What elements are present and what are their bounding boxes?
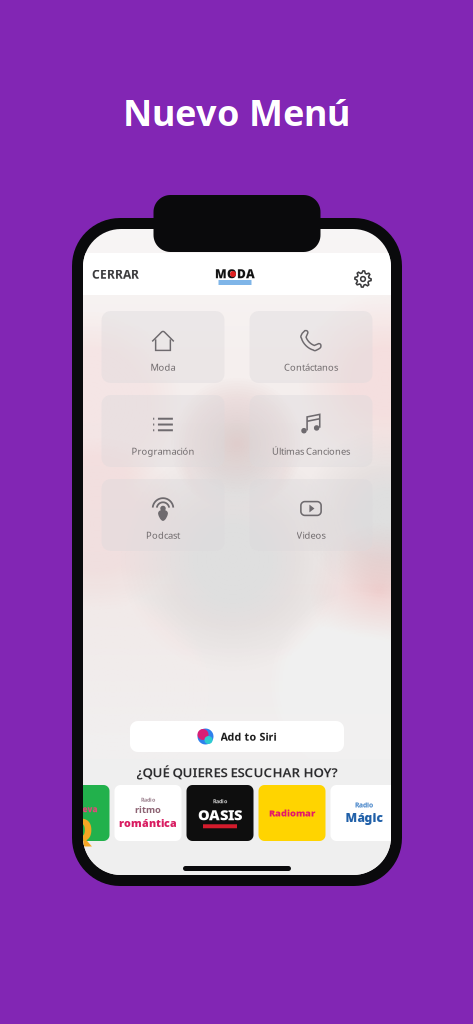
button[interactable]: Moda xyxy=(101,311,224,383)
staticText: CERRAR xyxy=(92,266,139,282)
staticText: Radio xyxy=(141,796,155,803)
staticText: Radio xyxy=(355,801,373,809)
staticText: Últimas Canciones xyxy=(272,445,350,457)
button[interactable]: Nueva Q xyxy=(42,785,109,841)
button[interactable]: Podcast xyxy=(101,479,224,551)
button[interactable]: CERRAR xyxy=(92,259,156,289)
staticText: romántica xyxy=(119,816,177,830)
staticText: Add to Siri xyxy=(220,729,276,744)
staticText: OASIS xyxy=(198,805,242,824)
button[interactable]: Add to Siri xyxy=(130,721,344,752)
staticText: Videos xyxy=(296,529,325,541)
button[interactable]: Radiomar xyxy=(258,785,325,841)
staticText: Nueva xyxy=(70,804,97,814)
staticText: Podcast xyxy=(146,529,180,541)
staticText: Radio xyxy=(213,798,227,805)
staticText: Programación xyxy=(131,445,194,457)
button[interactable]: Contáctanos xyxy=(249,311,372,383)
staticText: Mágic xyxy=(345,809,382,825)
staticText: Nuevo Menú xyxy=(123,88,350,136)
staticText: ¿QUÉ QUIERES ESCUCHAR HOY? xyxy=(136,763,337,781)
button[interactable]: Oasis xyxy=(186,785,253,841)
button[interactable]: Radio Mágica xyxy=(330,785,397,841)
staticText: MODA xyxy=(215,265,255,281)
staticText: Q xyxy=(67,808,93,850)
button[interactable]: Ritmo Romántica xyxy=(114,785,181,841)
button[interactable]: Settings xyxy=(348,264,378,294)
staticText: ritmo xyxy=(135,803,161,816)
button[interactable]: Programación xyxy=(101,395,224,467)
button[interactable]: Videos xyxy=(249,479,372,551)
button[interactable]: Últimas Canciones xyxy=(249,395,372,467)
staticText: Contáctanos xyxy=(284,361,338,373)
staticText: Moda xyxy=(150,361,175,373)
staticText: Radiomar xyxy=(269,807,315,819)
